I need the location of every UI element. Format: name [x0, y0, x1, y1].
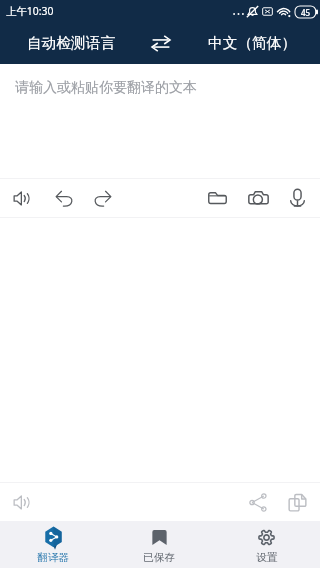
button[interactable]: Open file: [198, 179, 236, 217]
button[interactable]: 已保存: [106, 521, 213, 568]
staticText: 上午10:30: [6, 4, 54, 18]
button[interactable]: Redo: [83, 179, 121, 217]
staticText: 中文（简体）: [208, 34, 297, 53]
staticText: 设置: [256, 551, 278, 564]
button[interactable]: 翻译器: [0, 521, 106, 568]
staticText: 45: [301, 7, 311, 18]
button[interactable]: Copy: [278, 483, 316, 521]
staticText: 已保存: [143, 551, 176, 564]
button[interactable]: Camera: [239, 179, 277, 217]
button[interactable]: Speak translation: [3, 483, 41, 521]
staticText: 请输入或粘贴你要翻译的文本: [15, 79, 197, 97]
button[interactable]: 设置: [213, 521, 320, 568]
staticText: 自动检测语言: [27, 34, 116, 53]
button[interactable]: Share: [239, 483, 277, 521]
staticText: 翻译器: [37, 551, 70, 564]
button[interactable]: 中文（简体）: [178, 22, 320, 64]
button[interactable]: Undo: [45, 179, 83, 217]
button[interactable]: Swap languages: [143, 22, 178, 64]
button[interactable]: Speak text: [3, 179, 41, 217]
button[interactable]: Microphone: [278, 179, 316, 217]
button[interactable]: 自动检测语言: [0, 22, 143, 64]
